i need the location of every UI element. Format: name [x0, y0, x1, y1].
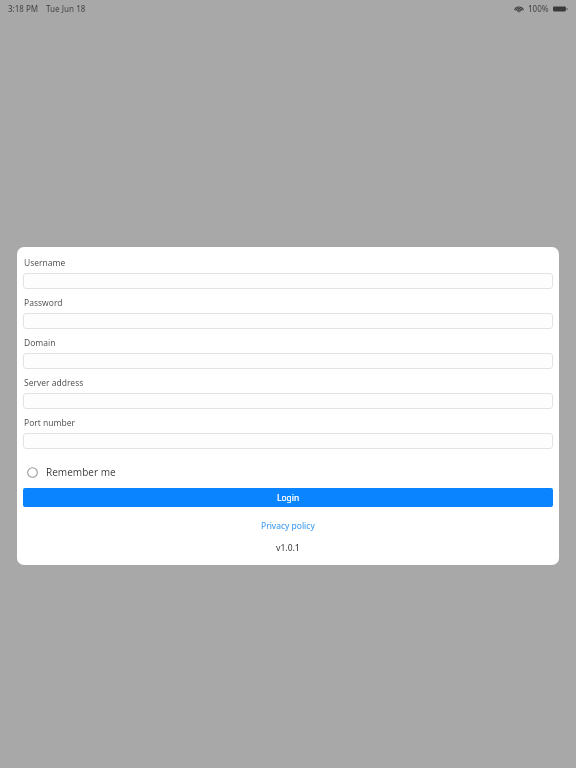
button[interactable]: Remember me toggle: [23, 463, 122, 481]
button[interactable]: Privacy policy: [255, 518, 321, 534]
button[interactable]: [23, 313, 553, 329]
button[interactable]: [23, 433, 553, 449]
staticText: Port number: [24, 417, 76, 429]
staticText: Server address: [24, 377, 84, 389]
button[interactable]: Login: [23, 488, 553, 507]
staticText: Domain: [24, 337, 56, 349]
other: Remember me toggle: [27, 467, 38, 478]
staticText: Remember me: [46, 465, 116, 479]
button[interactable]: [23, 353, 553, 369]
staticText: Username: [24, 257, 66, 269]
staticText: Password: [24, 297, 63, 309]
staticText: Tue Jun 18: [46, 3, 86, 14]
staticText: 3:18 PM: [8, 3, 39, 14]
staticText: v1.0.1: [276, 542, 300, 554]
button[interactable]: [23, 273, 553, 289]
staticText: Login: [277, 492, 300, 504]
staticText: Privacy policy: [261, 520, 315, 532]
button[interactable]: [23, 393, 553, 409]
staticText: 100%: [528, 3, 549, 14]
